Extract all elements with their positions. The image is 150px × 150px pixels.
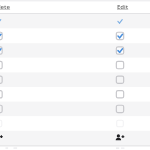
button[interactable]: Unchecked [0, 89, 150, 104]
button[interactable]: Checked [116, 17, 125, 26]
button[interactable]: Delete [0, 3, 11, 11]
button[interactable]: Unchecked [116, 77, 125, 86]
button[interactable]: Checked [116, 32, 125, 41]
button[interactable]: Unchecked [0, 74, 150, 89]
staticText: Delete [0, 3, 11, 11]
button[interactable]: Add person [116, 137, 125, 146]
staticText: Edit [117, 3, 129, 11]
button[interactable]: Add person [0, 134, 150, 149]
button[interactable]: Unchecked [116, 92, 125, 101]
button[interactable]: Unchecked [0, 119, 150, 134]
button[interactable]: Unchecked [116, 62, 125, 71]
button[interactable]: Edit [117, 3, 129, 11]
button[interactable]: Checked [116, 47, 125, 56]
button[interactable]: Unchecked [0, 104, 150, 119]
button[interactable]: Unchecked [116, 107, 125, 116]
button[interactable]: Unchecked [0, 59, 150, 74]
button[interactable]: Checked [0, 29, 150, 44]
button[interactable]: Unchecked [116, 122, 125, 131]
button[interactable]: Checked [0, 14, 150, 29]
button[interactable]: Checked [0, 44, 150, 59]
